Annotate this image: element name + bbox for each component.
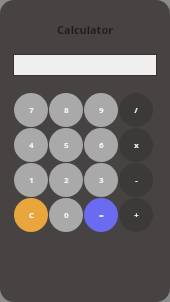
button[interactable]: 1 (14, 163, 48, 197)
staticText: 3 (99, 175, 104, 185)
staticText: 2 (64, 175, 69, 185)
button[interactable]: 6 (84, 128, 118, 162)
button[interactable]: 2 (49, 163, 83, 197)
button[interactable]: 9 (84, 93, 118, 127)
staticText: 6 (99, 140, 104, 150)
staticText: = (99, 210, 104, 220)
button[interactable]: 3 (84, 163, 118, 197)
button[interactable]: = (84, 198, 118, 232)
staticText: + (134, 210, 139, 220)
button[interactable]: 5 (49, 128, 83, 162)
button[interactable]: + (119, 198, 153, 232)
staticText: x (134, 140, 139, 150)
staticText: - (135, 175, 138, 185)
staticText: C (29, 210, 34, 220)
button[interactable]: 4 (14, 128, 48, 162)
button[interactable]: - (119, 163, 153, 197)
button[interactable]: 0 (49, 198, 83, 232)
staticText: 4 (29, 140, 34, 150)
staticText: / (134, 105, 138, 115)
staticText: 7 (29, 105, 34, 115)
button[interactable]: 7 (14, 93, 48, 127)
button[interactable]: C (14, 198, 48, 232)
button[interactable]: / (119, 93, 153, 127)
button[interactable]: x (119, 128, 153, 162)
staticText: 5 (64, 140, 69, 150)
staticText: 0 (64, 210, 69, 220)
staticText: 8 (64, 105, 69, 115)
button[interactable]: 8 (49, 93, 83, 127)
staticText: 1 (29, 175, 34, 185)
staticText: 9 (99, 105, 104, 115)
staticText: Calculator (57, 22, 114, 37)
